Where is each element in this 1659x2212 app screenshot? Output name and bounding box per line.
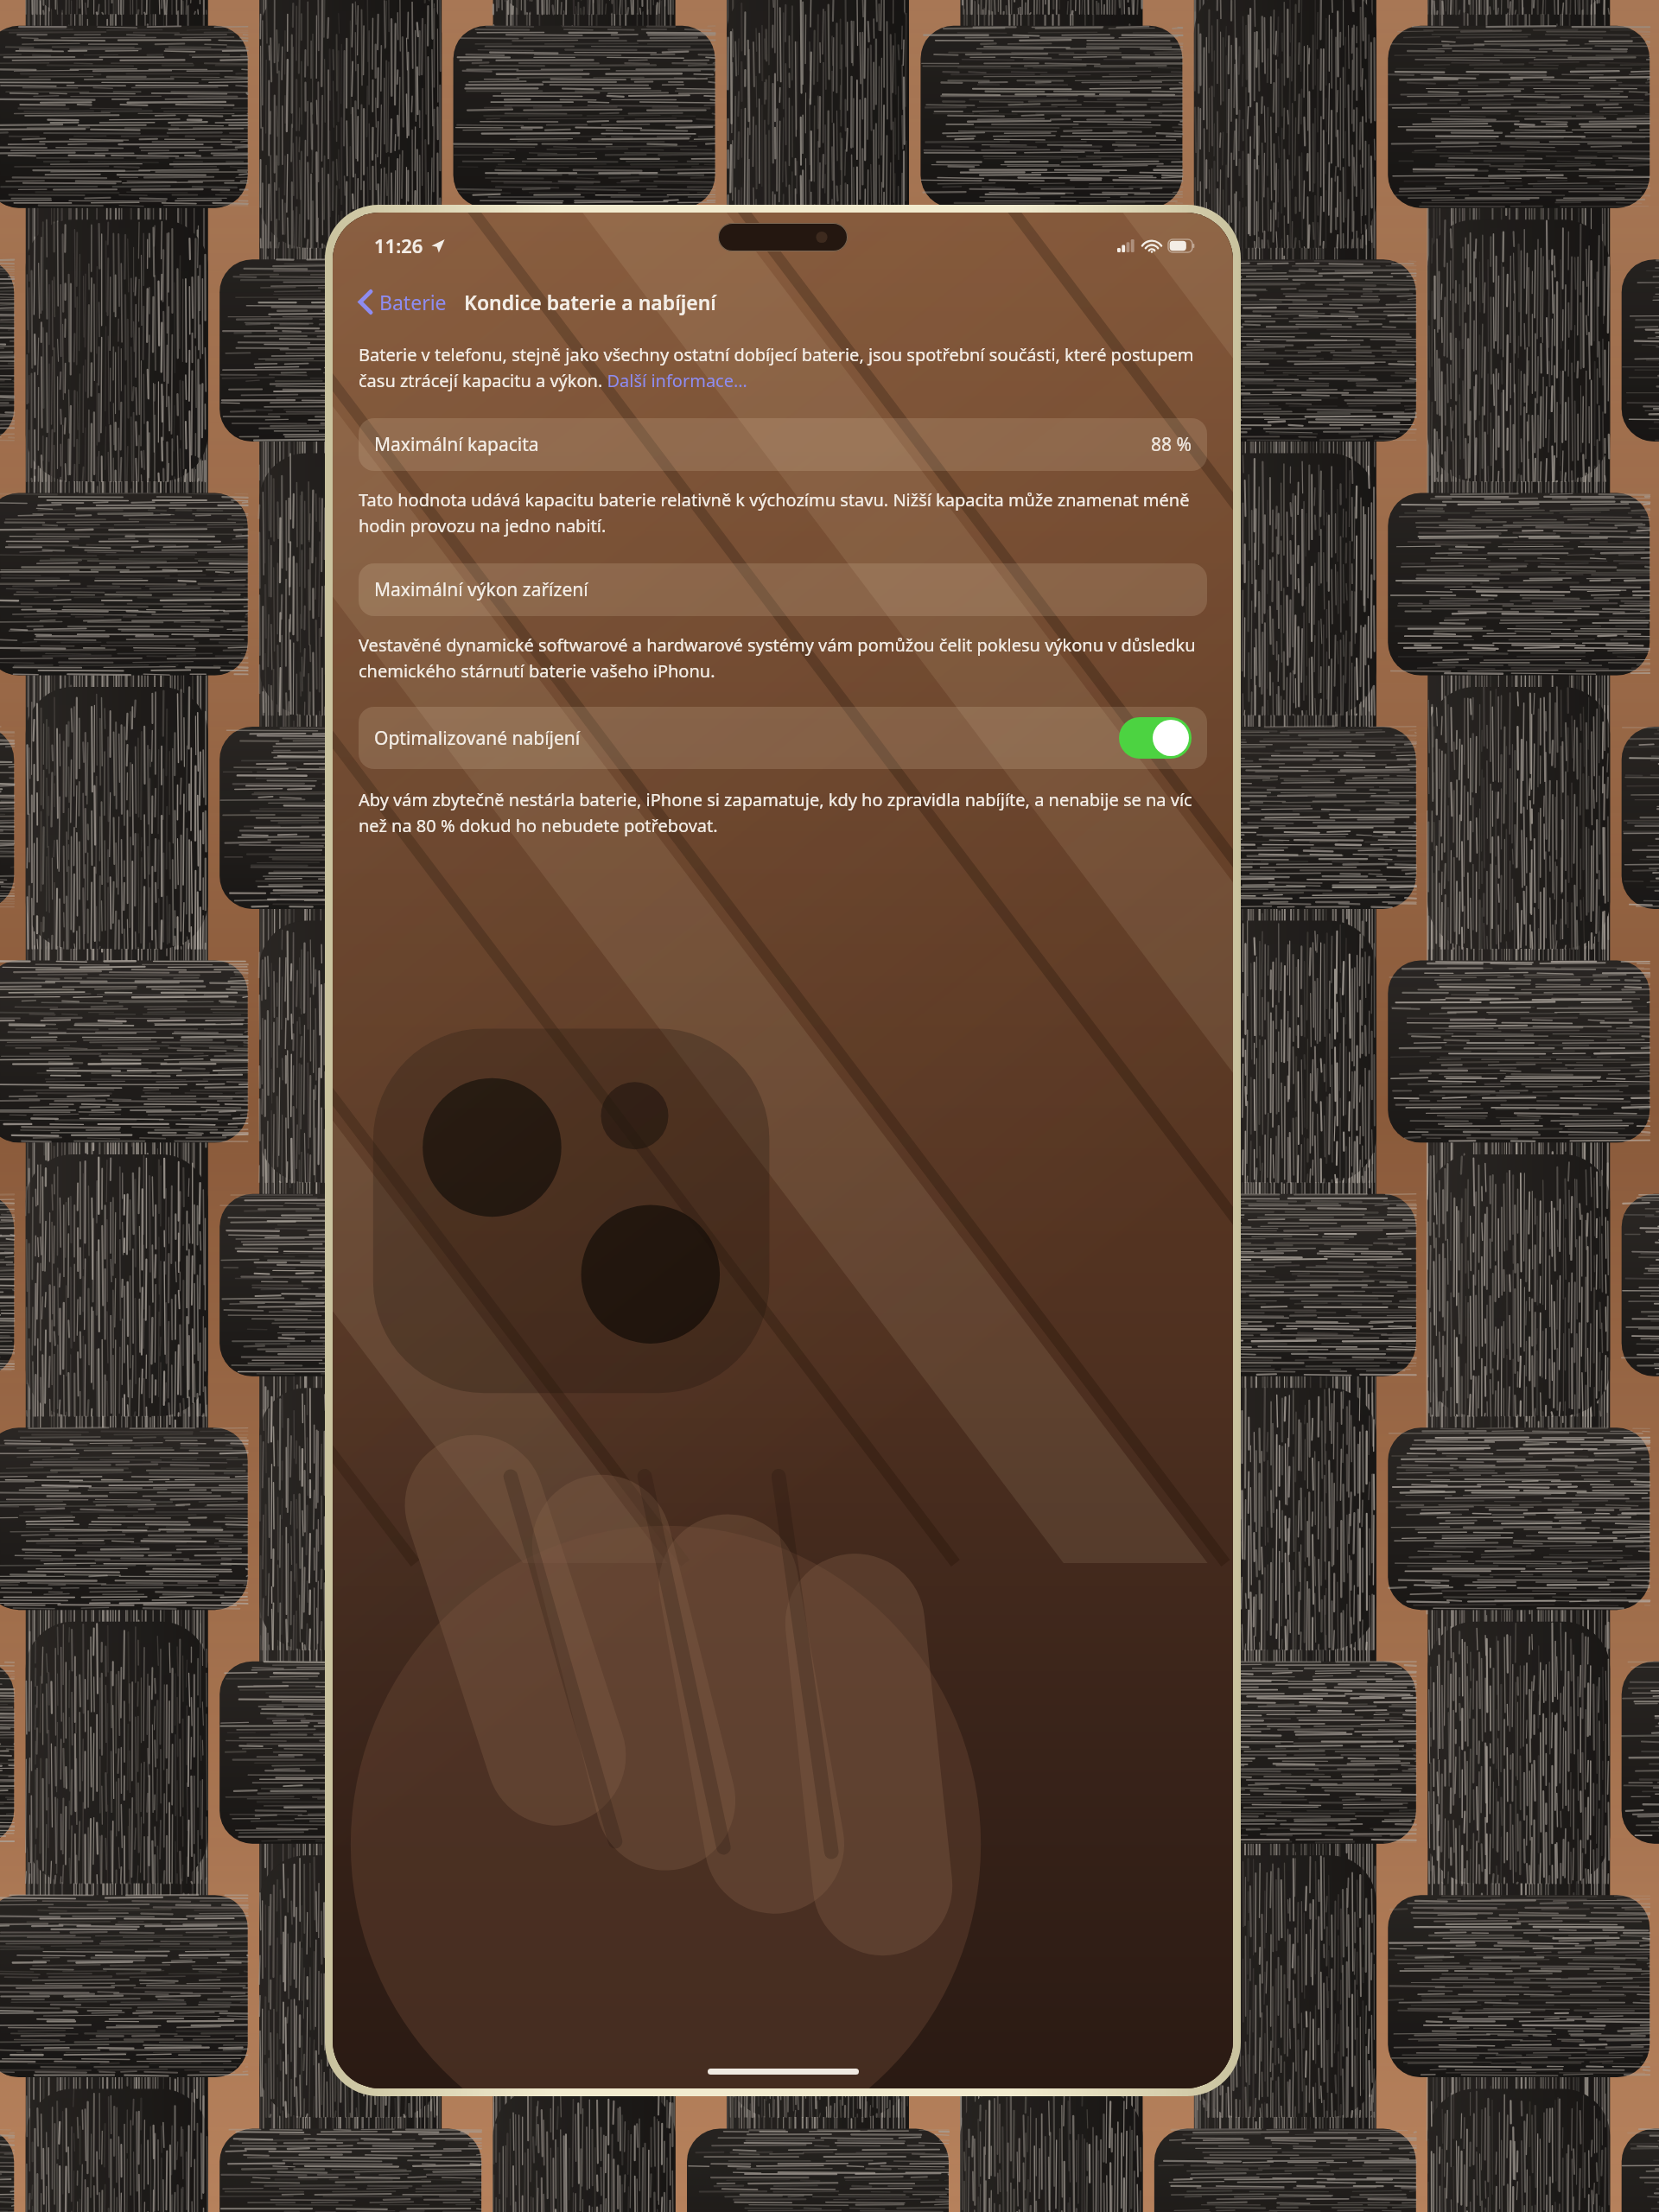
button[interactable]: Maximální kapacita xyxy=(359,418,1207,471)
staticText: Maximální výkon zařízení xyxy=(374,577,588,602)
staticText: Optimalizované nabíjení xyxy=(374,726,581,751)
staticText: Maximální kapacita xyxy=(374,432,539,457)
staticText: 88 % xyxy=(1151,432,1192,457)
staticText: Kondice baterie a nabíjení xyxy=(464,289,716,315)
button[interactable]: Baterie xyxy=(353,285,452,319)
staticText: 11:26 xyxy=(374,232,423,258)
staticText: Aby vám zbytečně nestárla baterie, iPhon… xyxy=(359,788,1207,837)
staticText: Baterie v telefonu, stejně jako všechny … xyxy=(359,343,1207,392)
button[interactable]: Maximální výkon zařízení xyxy=(359,563,1207,616)
staticText: Vestavěné dynamické softwarové a hardwar… xyxy=(359,633,1207,683)
button[interactable]: Optimalizované nabíjení, zapnuto xyxy=(1119,717,1192,759)
staticText: Baterie xyxy=(379,289,447,315)
staticText: Tato hodnota udává kapacitu baterie rela… xyxy=(359,488,1207,537)
button[interactable]: Optimalizované nabíjení xyxy=(359,707,1207,769)
